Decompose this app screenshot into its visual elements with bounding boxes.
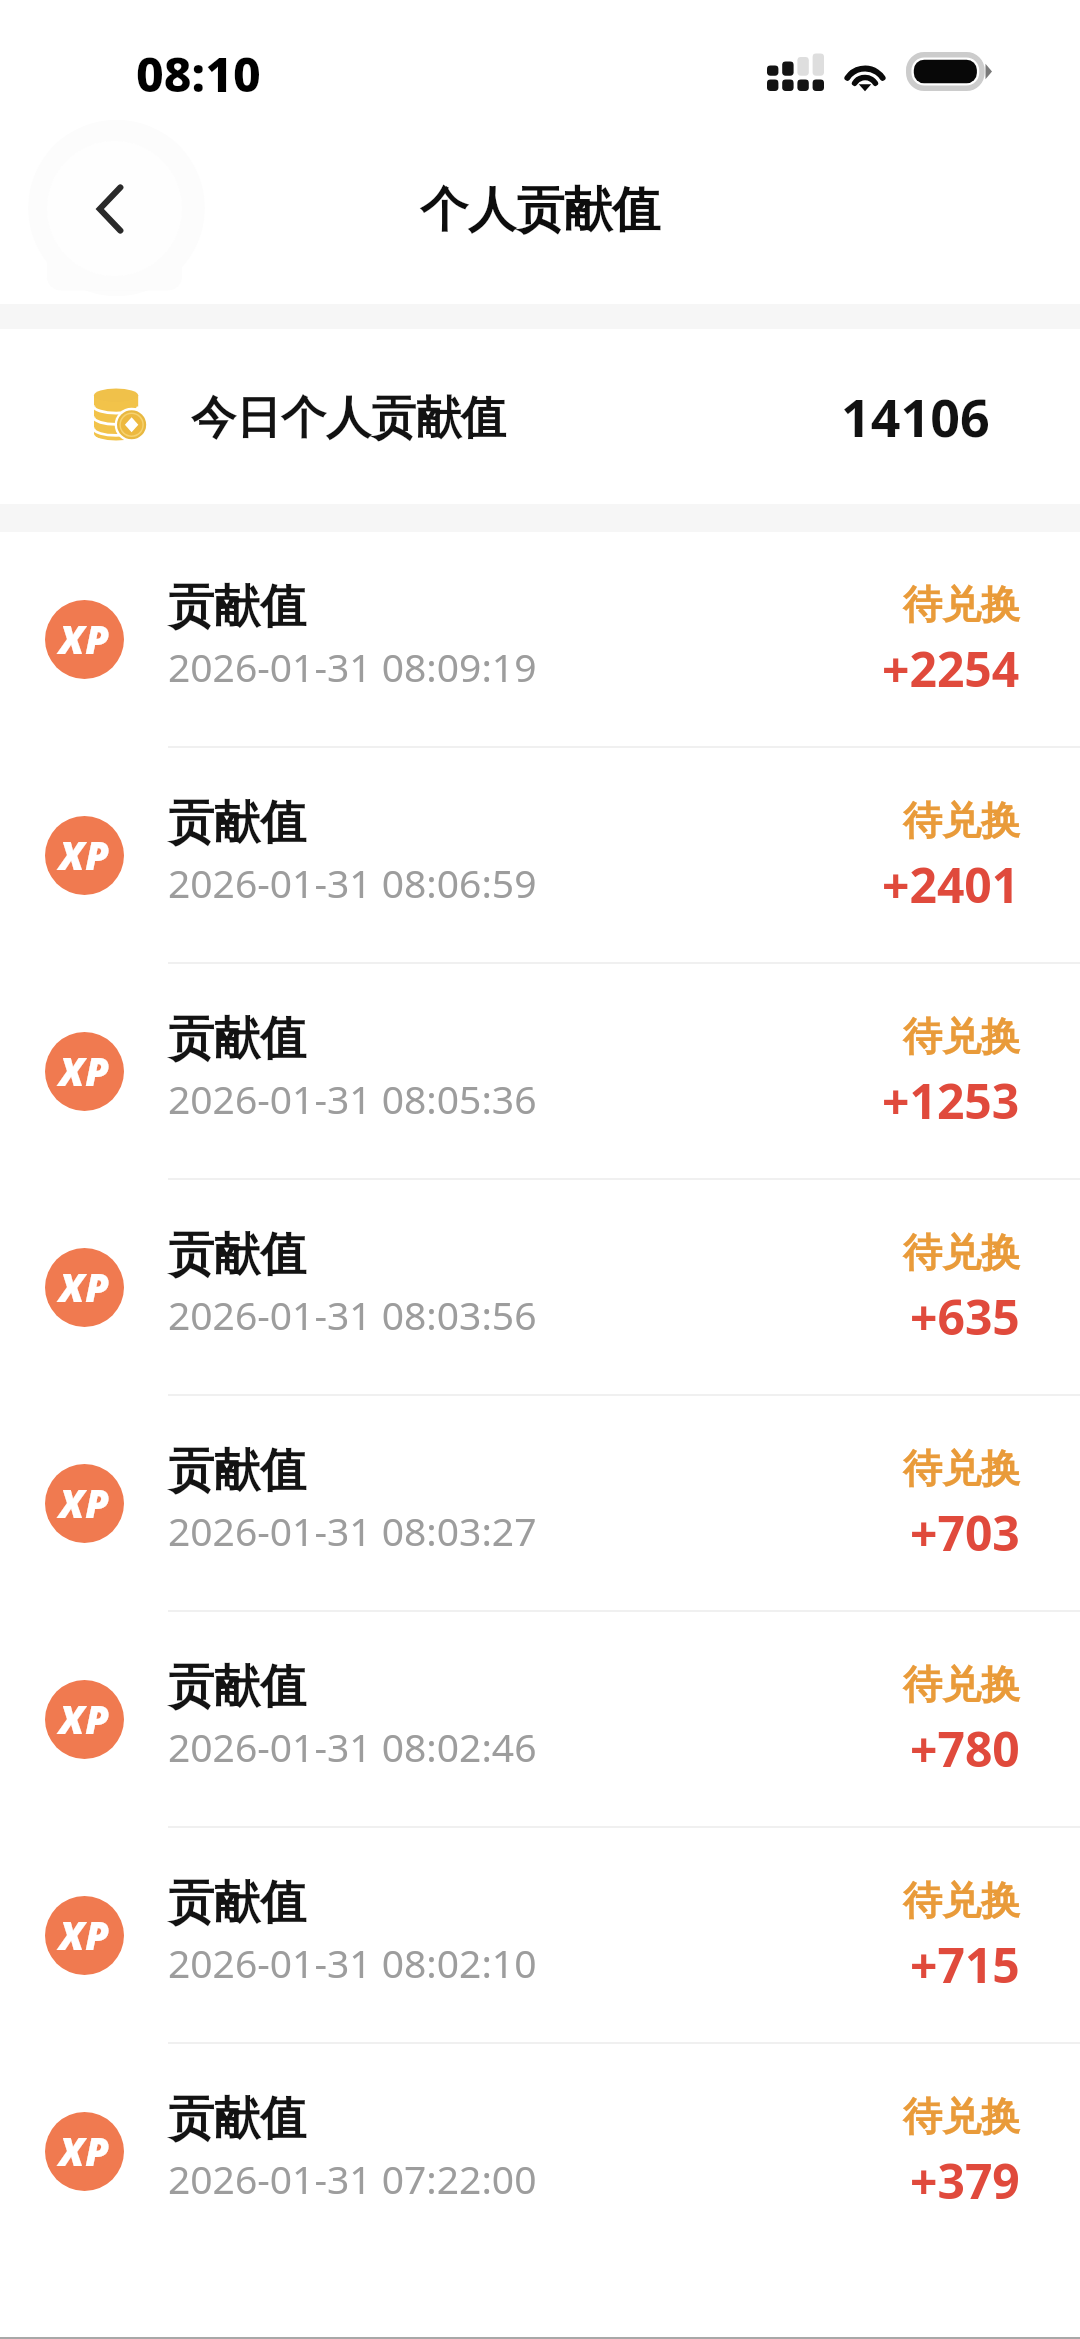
staticText: 2026-01-31 08:05:36 (168, 1072, 537, 1125)
staticText: +379 (910, 2148, 1020, 2213)
staticText: XP (59, 1477, 110, 1529)
staticText: +635 (910, 1284, 1020, 1349)
staticText: +1253 (882, 1068, 1020, 1133)
staticText: XP (59, 1693, 110, 1745)
staticText: 待兑换 (903, 1228, 1020, 1277)
staticText: XP (59, 1261, 110, 1313)
staticText: 贡献值 (168, 1658, 306, 1716)
button[interactable]: XP (0, 748, 1080, 962)
button[interactable]: 今日个人贡献值 (0, 329, 1080, 504)
staticText: 待兑换 (903, 2092, 1020, 2141)
staticText: +2401 (882, 852, 1020, 917)
staticText: 2026-01-31 08:03:56 (168, 1288, 537, 1341)
staticText: 贡献值 (168, 578, 306, 636)
button[interactable]: Back (47, 141, 182, 276)
staticText: +780 (910, 1716, 1020, 1781)
staticText: 2026-01-31 08:06:59 (168, 856, 537, 909)
staticText: 14106 (841, 381, 990, 452)
staticText: +2254 (882, 636, 1020, 701)
staticText: 2026-01-31 08:09:19 (168, 640, 537, 693)
staticText: XP (59, 1909, 110, 1961)
staticText: 待兑换 (903, 1660, 1020, 1709)
staticText: XP (59, 2125, 110, 2177)
staticText: 2026-01-31 08:02:46 (168, 1720, 537, 1773)
staticText: 贡献值 (168, 1226, 306, 1284)
staticText: 2026-01-31 08:02:10 (168, 1936, 537, 1989)
staticText: +703 (910, 1500, 1020, 1565)
staticText: 待兑换 (903, 1876, 1020, 1925)
button[interactable]: XP (0, 964, 1080, 1178)
staticText: 贡献值 (168, 1874, 306, 1932)
staticText: XP (59, 1045, 110, 1097)
staticText: 待兑换 (903, 580, 1020, 629)
staticText: +715 (910, 1932, 1020, 1997)
staticText: XP (59, 613, 110, 665)
staticText: 贡献值 (168, 1442, 306, 1500)
staticText: XP (59, 829, 110, 881)
button[interactable]: XP (0, 1828, 1080, 2042)
button[interactable]: XP (0, 1612, 1080, 1826)
staticText: 2026-01-31 08:03:27 (168, 1504, 537, 1557)
button[interactable]: XP (0, 2044, 1080, 2258)
staticText: 待兑换 (903, 1012, 1020, 1061)
staticText: 待兑换 (903, 796, 1020, 845)
staticText: 今日个人贡献值 (191, 390, 506, 447)
button[interactable]: XP (0, 1180, 1080, 1394)
staticText: 08:10 (136, 41, 261, 106)
staticText: 待兑换 (903, 1444, 1020, 1493)
staticText: 个人贡献值 (420, 180, 660, 240)
button[interactable]: XP (0, 532, 1080, 746)
staticText: 贡献值 (168, 794, 306, 852)
button[interactable]: XP (0, 1396, 1080, 1610)
staticText: 贡献值 (168, 1010, 306, 1068)
staticText: 贡献值 (168, 2090, 306, 2148)
staticText: 2026-01-31 07:22:00 (168, 2152, 537, 2205)
